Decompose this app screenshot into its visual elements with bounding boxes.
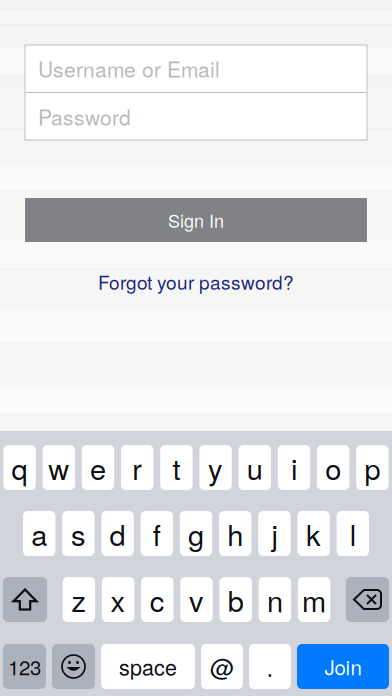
button[interactable]: @	[201, 644, 243, 689]
button[interactable]: x	[102, 577, 134, 622]
staticText: d	[110, 513, 126, 554]
staticText: o	[325, 447, 341, 488]
button[interactable]: k	[297, 511, 330, 556]
button[interactable]: w	[43, 445, 75, 490]
button[interactable]: .	[249, 644, 291, 689]
staticText: a	[31, 513, 47, 554]
button[interactable]: q	[3, 445, 36, 490]
button[interactable]: r	[121, 445, 153, 490]
staticText: c	[150, 579, 165, 620]
button[interactable]: b	[219, 577, 252, 622]
button[interactable]: 123	[3, 644, 46, 689]
button[interactable]: s	[62, 511, 95, 556]
button[interactable]: j	[258, 511, 291, 556]
staticText: j	[271, 513, 277, 554]
staticText: Sign In	[168, 207, 224, 233]
staticText: i	[291, 447, 297, 488]
button[interactable]: Forgot your password?	[98, 268, 294, 295]
staticText: p	[364, 447, 380, 488]
staticText: b	[228, 579, 244, 620]
button[interactable]: z	[63, 577, 95, 622]
button[interactable]: i	[278, 445, 310, 490]
button[interactable]: Emoji keyboard	[52, 644, 95, 689]
staticText: h	[227, 513, 243, 554]
staticText: n	[267, 579, 283, 620]
staticText: l	[350, 513, 356, 554]
button[interactable]: u	[239, 445, 271, 490]
staticText: Password	[38, 101, 131, 132]
staticText: e	[90, 447, 106, 488]
button[interactable]: n	[259, 577, 291, 622]
button[interactable]: f	[141, 511, 173, 556]
staticText: y	[208, 447, 223, 488]
staticText: f	[153, 513, 161, 554]
button[interactable]: l	[337, 511, 369, 556]
staticText: q	[12, 447, 28, 488]
staticText: t	[172, 447, 180, 488]
staticText: @	[210, 649, 234, 684]
staticText: s	[71, 513, 86, 554]
button[interactable]: p	[356, 445, 389, 490]
staticText: w	[48, 447, 69, 488]
button[interactable]: o	[317, 445, 349, 490]
button[interactable]: t	[160, 445, 193, 490]
button[interactable]: Shift	[3, 577, 47, 622]
button[interactable]: space	[101, 644, 195, 689]
staticText: Forgot your password?	[98, 268, 294, 295]
staticText: k	[306, 513, 321, 554]
staticText: x	[111, 579, 126, 620]
staticText: m	[302, 579, 326, 620]
button[interactable]: m	[298, 577, 330, 622]
button[interactable]: e	[82, 445, 114, 490]
staticText: u	[247, 447, 263, 488]
staticText: 123	[8, 652, 41, 681]
button[interactable]: Delete	[346, 577, 389, 622]
button[interactable]: Username or Email	[25, 45, 367, 92]
staticText: g	[188, 513, 204, 554]
button[interactable]: Password	[25, 93, 367, 140]
staticText: Join	[324, 652, 361, 681]
button[interactable]: a	[23, 511, 55, 556]
staticText: z	[71, 579, 86, 620]
staticText: r	[132, 447, 142, 488]
button[interactable]: h	[219, 511, 251, 556]
staticText: v	[189, 579, 204, 620]
button[interactable]: Join	[297, 644, 389, 689]
button[interactable]: v	[180, 577, 213, 622]
staticText: .	[266, 649, 273, 684]
button[interactable]: Sign In	[25, 198, 367, 242]
staticText: Username or Email	[38, 53, 220, 84]
staticText: space	[119, 651, 177, 682]
button[interactable]: y	[199, 445, 232, 490]
button[interactable]: c	[141, 577, 173, 622]
button[interactable]: g	[180, 511, 212, 556]
button[interactable]: d	[101, 511, 134, 556]
